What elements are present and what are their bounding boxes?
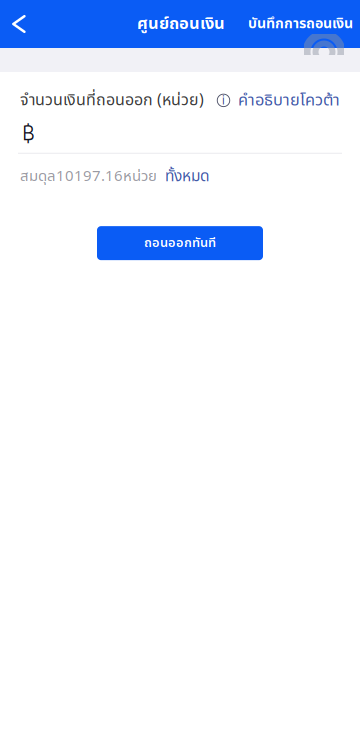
staticText: ศูนย์ถอนเงิน (137, 12, 225, 36)
staticText: ทั้งหมด (165, 165, 210, 188)
staticText: ถอนออกทันที (144, 233, 216, 253)
staticText: ฿ (22, 113, 36, 151)
staticText: บันทึกการถอนเงิน (248, 13, 353, 35)
staticText: จำนวนเงินที่ถอนออก (หน่วย) (20, 88, 204, 112)
staticText: สมดุล10197.16หน่วย (20, 165, 157, 188)
staticText: i (222, 93, 225, 107)
button[interactable]: Back (0, 0, 50, 48)
button[interactable]: ทั้งหมด (165, 165, 210, 188)
button[interactable]: บันทึกการถอนเงิน (248, 1, 360, 47)
button[interactable]: i (217, 88, 340, 113)
staticText: คำอธิบายโควต้า (238, 88, 340, 113)
button[interactable]: ถอนออกทันที (97, 226, 263, 260)
